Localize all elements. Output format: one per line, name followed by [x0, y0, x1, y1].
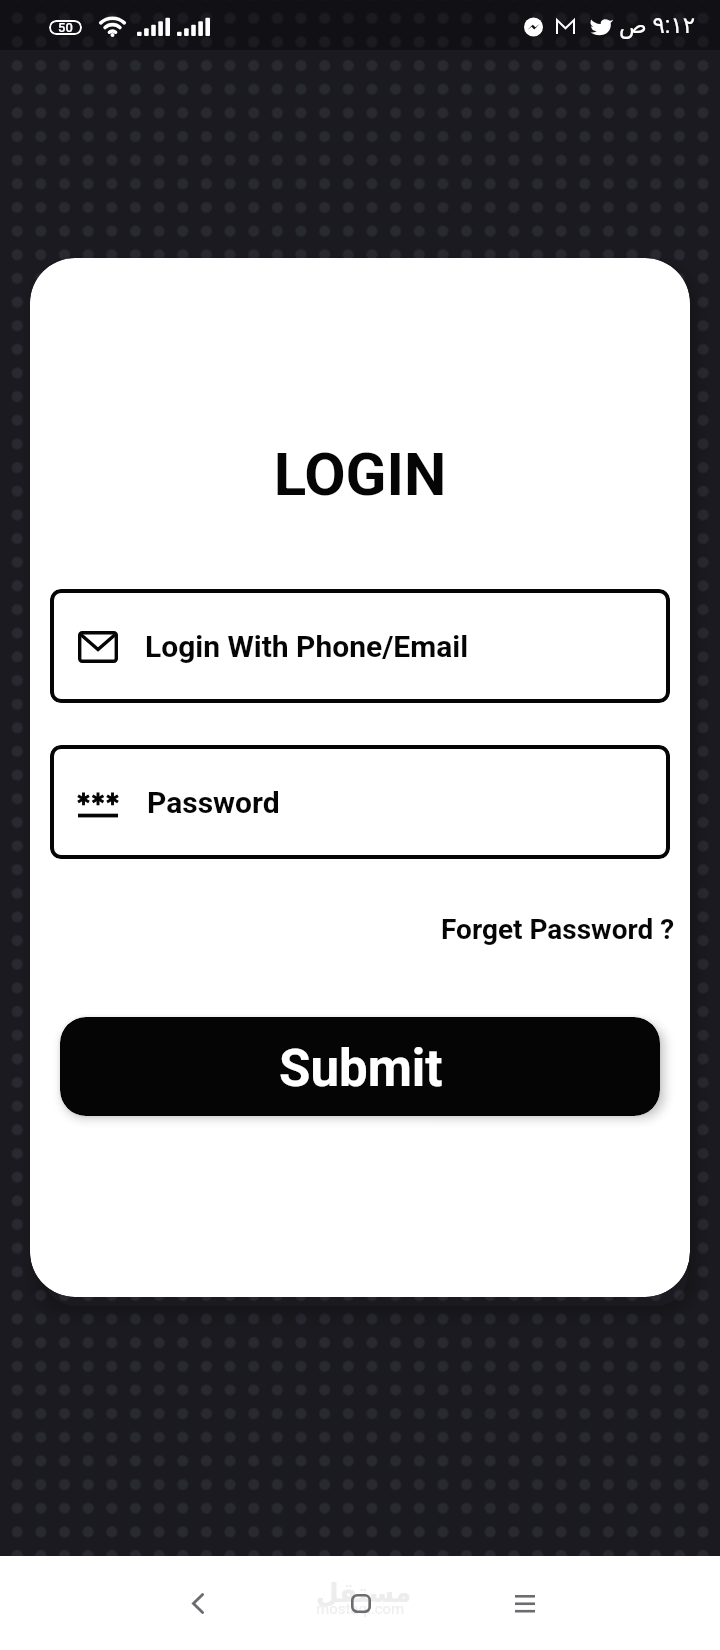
- button[interactable]: Forget Password ?: [441, 913, 675, 946]
- button[interactable]: Login With Phone/Email: [50, 589, 670, 703]
- button[interactable]: Password: [50, 745, 670, 859]
- staticText: LOGIN: [30, 439, 690, 509]
- staticText: Submit: [279, 1039, 443, 1099]
- button[interactable]: Home: [316, 1556, 406, 1650]
- staticText: 50: [58, 20, 73, 35]
- button[interactable]: Menu: [480, 1556, 570, 1650]
- button[interactable]: Submit: [60, 1017, 660, 1116]
- staticText: مستقل: [316, 1578, 412, 1608]
- staticText: Login With Phone/Email: [145, 629, 469, 664]
- button[interactable]: Back: [153, 1556, 243, 1650]
- staticText: ٩:١٢ ص: [619, 12, 696, 39]
- staticText: mostaql.com: [316, 1600, 405, 1618]
- staticText: Password: [147, 785, 280, 820]
